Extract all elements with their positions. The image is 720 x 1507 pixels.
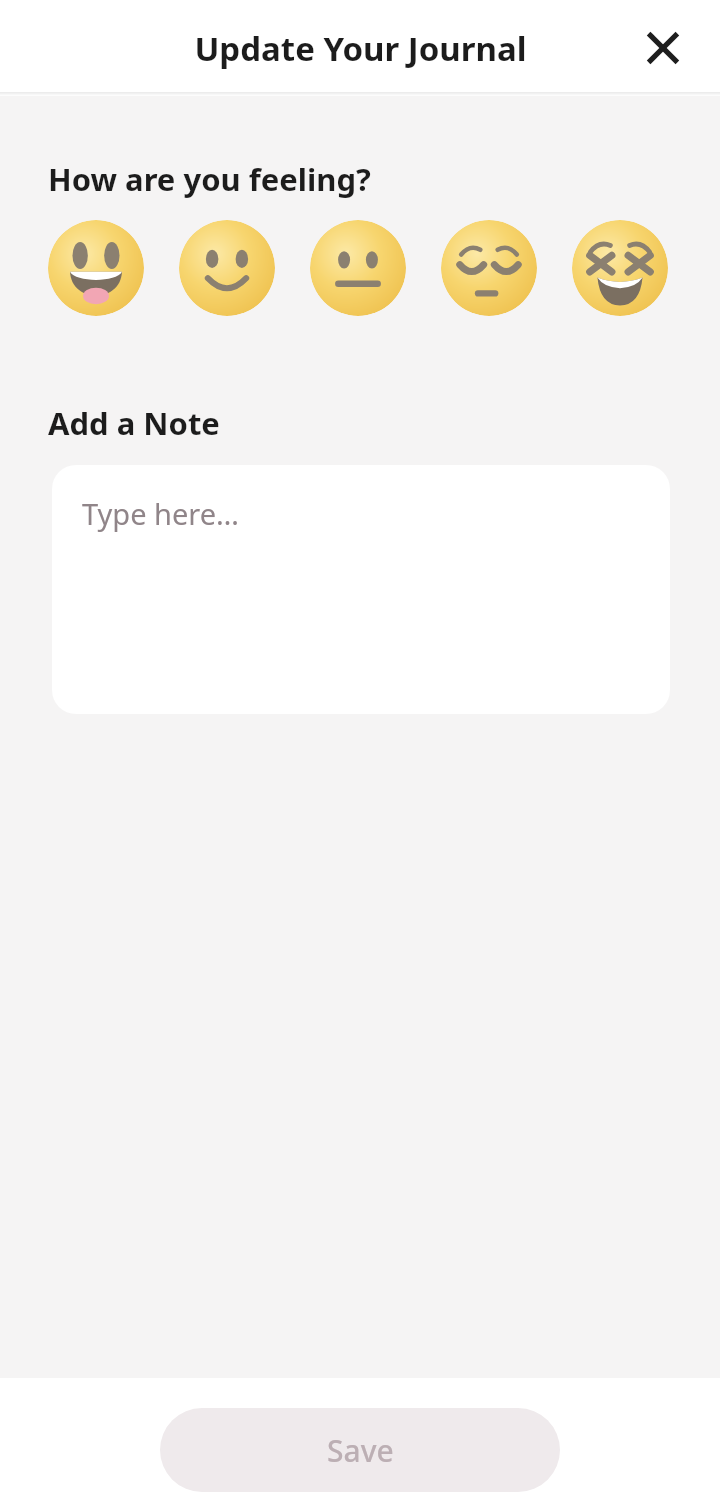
button[interactable]: Sad mood bbox=[441, 220, 537, 316]
staticText: Add a Note bbox=[48, 402, 220, 444]
staticText: Save bbox=[327, 1430, 394, 1471]
button[interactable]: Very happy mood bbox=[48, 220, 144, 316]
staticText: Update Your Journal bbox=[194, 26, 527, 71]
button[interactable]: Neutral mood bbox=[310, 220, 406, 316]
staticText: How are you feeling? bbox=[48, 158, 371, 200]
button[interactable]: Type here… bbox=[52, 465, 670, 714]
button[interactable]: Happy mood bbox=[179, 220, 275, 316]
staticText: Type here… bbox=[82, 494, 240, 533]
button[interactable]: Very sad mood bbox=[572, 220, 668, 316]
button[interactable]: Close bbox=[637, 22, 689, 74]
button[interactable]: Save bbox=[160, 1408, 560, 1492]
